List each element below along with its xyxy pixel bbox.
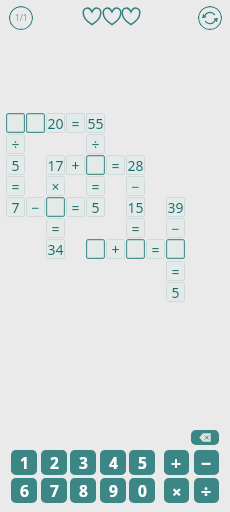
button[interactable]: = <box>6 176 25 196</box>
staticText: 5 <box>138 452 147 473</box>
button[interactable]: 5 <box>166 282 185 302</box>
staticText: = <box>111 156 120 175</box>
button[interactable]: = <box>106 155 125 175</box>
button[interactable]: 1/1 <box>9 6 33 30</box>
button[interactable]: × <box>46 176 65 196</box>
staticText: = <box>71 114 80 133</box>
staticText: ÷ <box>201 479 212 503</box>
button[interactable]: × <box>164 478 189 503</box>
staticText: = <box>171 262 180 281</box>
button[interactable]: 55 <box>86 113 105 133</box>
staticText: 5 <box>91 198 100 217</box>
button[interactable]: + <box>164 450 189 475</box>
staticText: = <box>51 219 60 238</box>
staticText: 15 <box>127 198 144 217</box>
button[interactable]: 28 <box>126 155 145 175</box>
button[interactable]: = <box>166 261 185 281</box>
button[interactable]: 34 <box>46 239 65 259</box>
button[interactable]: 5 <box>129 450 155 475</box>
button[interactable]: 4 <box>100 450 126 475</box>
button[interactable] <box>26 113 45 133</box>
button[interactable]: = <box>46 218 65 238</box>
staticText: ÷ <box>91 135 100 154</box>
button[interactable]: 0 <box>129 478 155 503</box>
button[interactable]: = <box>146 239 165 259</box>
button[interactable]: ÷ <box>6 134 25 154</box>
button[interactable]: 20 <box>46 113 65 133</box>
staticText: 7 <box>11 198 20 217</box>
staticText: + <box>171 451 182 475</box>
staticText: − <box>131 177 140 196</box>
button[interactable] <box>46 197 65 217</box>
button[interactable]: 17 <box>46 155 65 175</box>
button[interactable] <box>126 239 145 259</box>
staticText: = <box>91 177 100 196</box>
button[interactable] <box>86 155 105 175</box>
staticText: = <box>71 198 80 217</box>
staticText: × <box>51 177 60 196</box>
button[interactable]: 6 <box>11 478 37 503</box>
staticText: 5 <box>171 283 180 302</box>
staticText: × <box>172 480 182 502</box>
staticText: 28 <box>127 156 144 175</box>
staticText: 55 <box>87 114 104 133</box>
staticText: 7 <box>50 480 59 501</box>
button[interactable]: = <box>66 197 85 217</box>
button[interactable]: = <box>66 113 85 133</box>
button[interactable]: 7 <box>41 478 67 503</box>
button[interactable]: 8 <box>70 478 96 503</box>
staticText: 34 <box>47 240 64 259</box>
button[interactable]: 3 <box>70 450 96 475</box>
staticText: − <box>31 198 40 217</box>
button[interactable] <box>6 113 25 133</box>
button[interactable]: + <box>66 155 85 175</box>
other: Life <box>103 7 121 25</box>
button[interactable]: ÷ <box>86 134 105 154</box>
staticText: 5 <box>11 156 20 175</box>
staticText: 1/1 <box>15 12 28 24</box>
button[interactable]: 7 <box>6 197 25 217</box>
button[interactable]: 2 <box>41 450 67 475</box>
button[interactable]: 39 <box>166 197 185 217</box>
button[interactable]: − <box>126 176 145 196</box>
staticText: 6 <box>20 480 29 501</box>
button[interactable]: − <box>26 197 45 217</box>
button[interactable]: Backspace <box>191 430 219 445</box>
staticText: 8 <box>79 480 88 501</box>
staticText: = <box>131 219 140 238</box>
other: Life <box>83 7 101 25</box>
staticText: = <box>11 177 20 196</box>
staticText: + <box>111 240 120 259</box>
button[interactable] <box>166 239 185 259</box>
button[interactable]: − <box>166 218 185 238</box>
button[interactable]: 9 <box>100 478 126 503</box>
button[interactable]: Restart <box>198 6 222 30</box>
staticText: + <box>71 156 80 175</box>
button[interactable]: ÷ <box>194 478 219 503</box>
staticText: − <box>171 219 180 238</box>
button[interactable]: = <box>126 218 145 238</box>
staticText: 0 <box>138 480 147 501</box>
button[interactable]: 5 <box>86 197 105 217</box>
staticText: 4 <box>109 452 118 473</box>
staticText: 3 <box>79 452 88 473</box>
button[interactable]: = <box>86 176 105 196</box>
staticText: ÷ <box>11 135 20 154</box>
other: Life <box>122 7 140 25</box>
button[interactable]: + <box>106 239 125 259</box>
button[interactable] <box>86 239 105 259</box>
staticText: 1 <box>20 452 29 473</box>
staticText: − <box>201 451 212 475</box>
staticText: 2 <box>50 452 59 473</box>
button[interactable]: 5 <box>6 155 25 175</box>
staticText: = <box>151 240 160 259</box>
staticText: 20 <box>47 114 64 133</box>
staticText: 39 <box>167 198 184 217</box>
staticText: 17 <box>47 156 64 175</box>
button[interactable]: 15 <box>126 197 145 217</box>
button[interactable]: 1 <box>11 450 37 475</box>
staticText: 9 <box>109 480 118 501</box>
button[interactable]: − <box>194 450 219 475</box>
